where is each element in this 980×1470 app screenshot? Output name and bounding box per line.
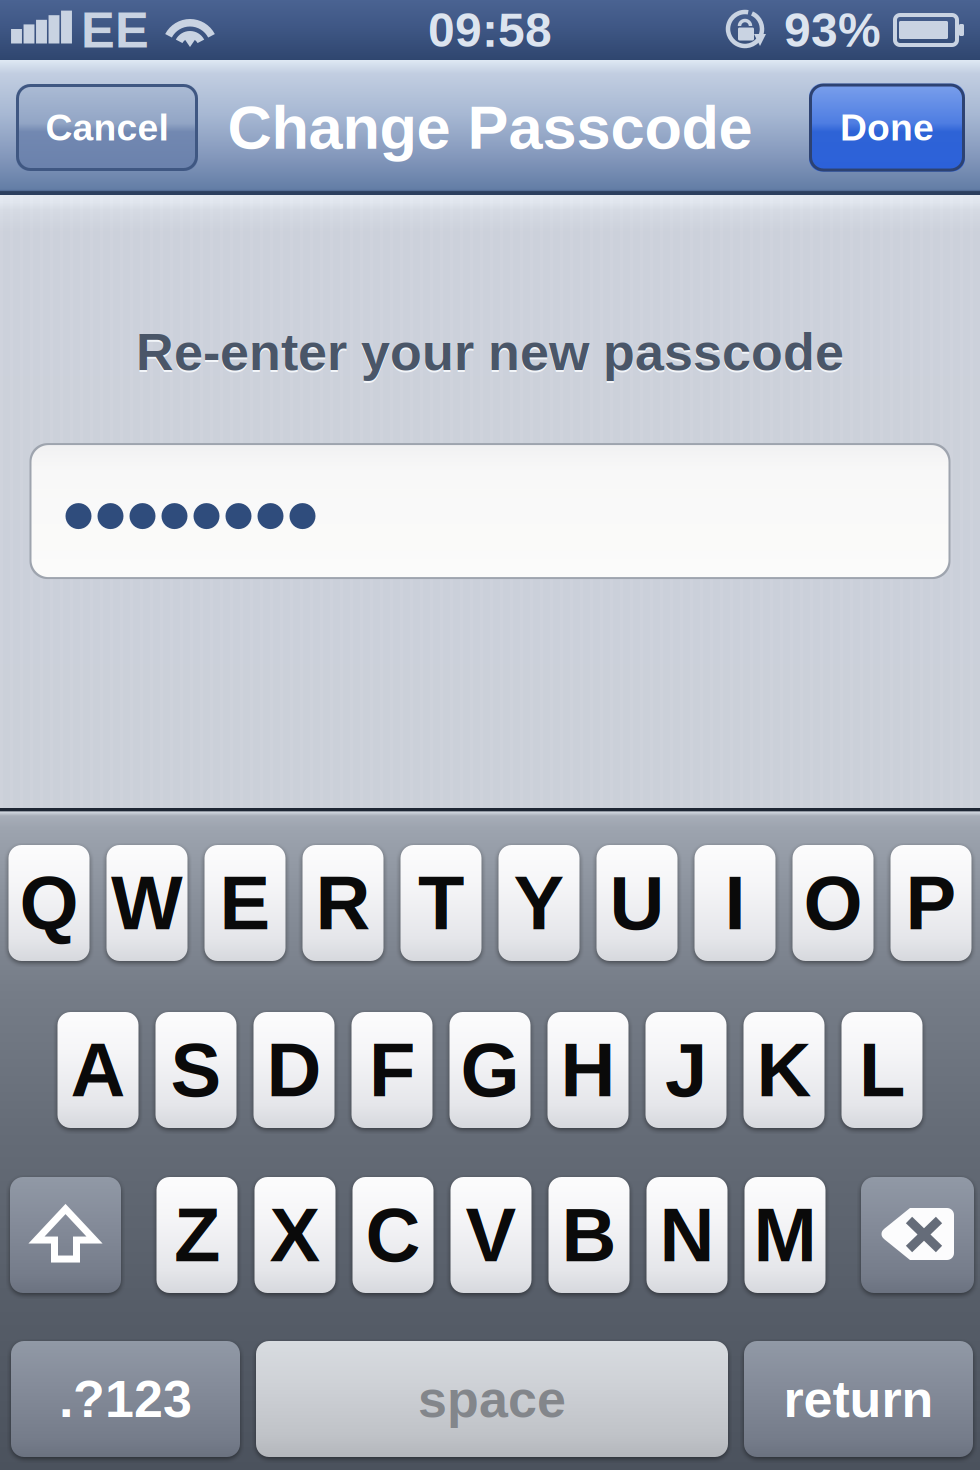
staticText: G — [460, 1027, 519, 1112]
button[interactable]: C — [352, 1177, 433, 1293]
button[interactable]: N — [646, 1177, 727, 1293]
staticText: M — [753, 1192, 816, 1277]
staticText: Cancel — [45, 107, 168, 148]
staticText: W — [111, 860, 183, 945]
staticText: D — [266, 1027, 321, 1112]
button[interactable]: I — [694, 845, 775, 961]
staticText: Done — [840, 107, 934, 148]
button[interactable]: .?123 — [11, 1341, 240, 1457]
staticText: J — [665, 1027, 707, 1112]
staticText: R — [315, 860, 370, 945]
staticText: Z — [174, 1192, 220, 1277]
staticText: space — [418, 1370, 566, 1428]
staticText: N — [659, 1192, 714, 1277]
button[interactable]: D — [253, 1012, 334, 1128]
staticText: F — [369, 1027, 415, 1112]
button[interactable]: P — [890, 845, 971, 961]
staticText: Q — [19, 860, 78, 945]
staticText: EE — [81, 2, 149, 58]
staticText: Re-enter your new passcode — [136, 323, 844, 381]
button[interactable]: R — [302, 845, 383, 961]
button[interactable]: V — [450, 1177, 531, 1293]
button[interactable]: O — [792, 845, 873, 961]
button[interactable]: L — [841, 1012, 922, 1128]
button[interactable]: M — [744, 1177, 825, 1293]
staticText: L — [859, 1027, 905, 1112]
staticText: S — [170, 1027, 221, 1112]
staticText: O — [803, 860, 862, 945]
button[interactable]: X — [254, 1177, 335, 1293]
button[interactable]: Delete — [861, 1177, 974, 1293]
staticText: H — [560, 1027, 615, 1112]
button[interactable]: B — [548, 1177, 629, 1293]
button[interactable]: S — [155, 1012, 236, 1128]
staticText: A — [70, 1027, 125, 1112]
staticText: Change Passcode — [227, 93, 752, 162]
staticText: .?123 — [59, 1370, 192, 1428]
staticText: 09:58 — [428, 3, 552, 57]
staticText: C — [365, 1192, 420, 1277]
button[interactable]: F — [351, 1012, 432, 1128]
button[interactable]: K — [743, 1012, 824, 1128]
staticText: I — [724, 860, 745, 945]
staticText: K — [756, 1027, 811, 1112]
button[interactable]: Q — [8, 845, 89, 961]
button[interactable]: Cancel — [16, 84, 198, 171]
button[interactable]: T — [400, 845, 481, 961]
button[interactable]: Done — [809, 83, 965, 171]
staticText: U — [609, 860, 664, 945]
staticText: Y — [513, 860, 564, 945]
button[interactable]: H — [547, 1012, 628, 1128]
staticText: 93% — [784, 3, 881, 57]
button[interactable]: J — [645, 1012, 726, 1128]
staticText: X — [269, 1192, 320, 1277]
button[interactable]: Z — [156, 1177, 237, 1293]
button[interactable]: G — [449, 1012, 530, 1128]
staticText: P — [905, 860, 956, 945]
staticText: E — [219, 860, 270, 945]
button[interactable]: return — [744, 1341, 973, 1457]
staticText: Re-enter your new passcode — [136, 325, 844, 383]
button[interactable]: Shift — [10, 1177, 121, 1293]
button[interactable]: space — [256, 1341, 728, 1457]
button[interactable]: E — [204, 845, 285, 961]
staticText: B — [561, 1192, 616, 1277]
staticText: V — [465, 1192, 516, 1277]
staticText: return — [783, 1370, 933, 1428]
button[interactable]: Y — [498, 845, 579, 961]
button[interactable]: U — [596, 845, 677, 961]
staticText: T — [418, 860, 464, 945]
button[interactable]: A — [57, 1012, 138, 1128]
button[interactable]: W — [106, 845, 187, 961]
